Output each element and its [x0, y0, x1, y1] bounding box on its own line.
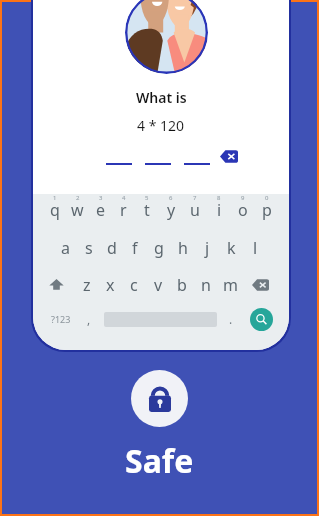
- staticText: r: [120, 199, 127, 221]
- staticText: q: [50, 199, 60, 221]
- staticText: f: [132, 237, 138, 259]
- staticText: k: [227, 237, 236, 259]
- button[interactable]: d: [100, 232, 123, 269]
- button[interactable]: ,: [78, 306, 99, 337]
- staticText: 5: [145, 194, 149, 202]
- staticText: 4: [122, 194, 126, 202]
- button[interactable]: m: [218, 269, 242, 306]
- staticText: p: [262, 199, 272, 221]
- staticText: c: [130, 274, 138, 296]
- staticText: a: [61, 237, 70, 259]
- staticText: ?123: [51, 313, 71, 325]
- staticText: m: [223, 274, 238, 296]
- button[interactable]: n: [194, 269, 218, 306]
- staticText: ,: [87, 311, 91, 327]
- staticText: z: [83, 274, 91, 296]
- button[interactable]: g: [147, 232, 171, 269]
- button[interactable]: 8: [207, 195, 231, 232]
- staticText: Safe: [125, 439, 194, 483]
- staticText: 3: [99, 194, 103, 202]
- button[interactable]: b: [170, 269, 194, 306]
- button[interactable]: z: [75, 269, 98, 306]
- button[interactable]: x: [98, 269, 122, 306]
- staticText: b: [177, 274, 187, 296]
- staticText: d: [107, 237, 117, 259]
- staticText: w: [71, 199, 84, 221]
- button[interactable]: 0: [255, 195, 279, 232]
- button[interactable]: j: [195, 232, 219, 269]
- staticText: e: [96, 199, 106, 221]
- staticText: 8: [217, 194, 221, 202]
- staticText: 6: [169, 194, 173, 202]
- staticText: What is: [136, 88, 187, 107]
- staticText: t: [144, 199, 150, 221]
- button[interactable]: v: [146, 269, 170, 306]
- button[interactable]: Shift: [43, 269, 75, 306]
- staticText: s: [85, 237, 93, 259]
- button[interactable]: 5: [135, 195, 159, 232]
- staticText: 4 * 120: [137, 116, 185, 135]
- button[interactable]: c: [122, 269, 146, 306]
- button[interactable]: ?123: [43, 306, 78, 337]
- button[interactable]: Delete: [242, 269, 279, 306]
- button[interactable]: f: [123, 232, 147, 269]
- staticText: y: [167, 199, 176, 221]
- button[interactable]: 4: [112, 195, 135, 232]
- staticText: i: [217, 199, 222, 221]
- button[interactable]: a: [54, 232, 77, 269]
- button[interactable]: Search: [250, 308, 273, 331]
- button[interactable]: k: [219, 232, 243, 269]
- button[interactable]: 9: [231, 195, 255, 232]
- staticText: 9: [241, 194, 245, 202]
- button[interactable]: Backspace: [220, 150, 238, 163]
- button[interactable]: 7: [183, 195, 207, 232]
- button[interactable]: l: [243, 232, 267, 269]
- button[interactable]: 6: [159, 195, 183, 232]
- button[interactable]: .: [222, 306, 239, 337]
- staticText: j: [205, 237, 210, 259]
- staticText: 1: [53, 194, 57, 202]
- button[interactable]: 3: [89, 195, 112, 232]
- staticText: 7: [193, 194, 197, 202]
- staticText: v: [154, 274, 163, 296]
- button[interactable]: s: [77, 232, 100, 269]
- button[interactable]: Safe: [131, 370, 188, 427]
- button[interactable]: h: [171, 232, 195, 269]
- staticText: n: [201, 274, 211, 296]
- staticText: 2: [76, 194, 80, 202]
- staticText: o: [238, 199, 248, 221]
- staticText: .: [229, 311, 233, 327]
- staticText: g: [154, 237, 164, 259]
- button[interactable]: 2: [66, 195, 89, 232]
- staticText: h: [178, 237, 188, 259]
- staticText: l: [253, 237, 258, 259]
- staticText: 0: [265, 194, 269, 202]
- button[interactable]: 1: [43, 195, 66, 232]
- staticText: u: [190, 199, 200, 221]
- staticText: x: [106, 274, 115, 296]
